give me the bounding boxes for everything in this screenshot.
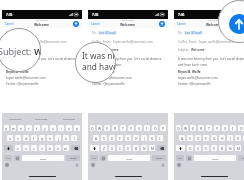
button[interactable]: Welcomed: [28, 113, 55, 123]
button[interactable]: x: [23, 145, 29, 151]
button[interactable]: N: [141, 145, 147, 151]
button[interactable]: K: [235, 135, 241, 141]
button[interactable]: Leo (iCloud): [99, 31, 116, 35]
button[interactable]: u: [50, 125, 56, 131]
button[interactable]: w: [11, 125, 16, 131]
button[interactable]: Leo (iCloud): [13, 31, 30, 35]
button[interactable]: Send: [73, 21, 79, 27]
button[interactable]: space: [22, 155, 64, 161]
button[interactable]: o: [66, 125, 72, 131]
button[interactable]: V: [211, 145, 217, 151]
button[interactable]: Emoji: [14, 155, 20, 161]
button[interactable]: Send: [159, 21, 165, 27]
button[interactable]: X: [109, 145, 115, 151]
button[interactable]: Z: [101, 145, 107, 151]
button[interactable]: Y: [214, 125, 220, 131]
button[interactable]: S: [101, 135, 107, 141]
button[interactable]: M: [149, 145, 155, 151]
button[interactable]: Emoji: [100, 155, 106, 161]
button[interactable]: R: [198, 125, 204, 131]
button[interactable]: U: [222, 125, 228, 131]
button[interactable]: Emoji keyboard: [177, 163, 181, 167]
button[interactable]: space: [108, 155, 150, 161]
button[interactable]: Emoji keyboard: [5, 163, 9, 167]
button[interactable]: j: [55, 135, 61, 141]
button[interactable]: t: [34, 125, 40, 131]
button[interactable]: I: [230, 125, 236, 131]
button[interactable]: return: [66, 155, 80, 161]
button[interactable]: Z: [187, 145, 193, 151]
button[interactable]: Dictate: [161, 163, 165, 167]
button[interactable]: R: [112, 125, 118, 131]
button[interactable]: V: [125, 145, 131, 151]
button[interactable]: Send message: [229, 14, 244, 34]
button[interactable]: p: [74, 125, 80, 131]
button[interactable]: i: [58, 125, 64, 131]
button[interactable]: G: [125, 135, 131, 141]
button[interactable]: f: [31, 135, 37, 141]
button[interactable]: E: [104, 125, 110, 131]
button[interactable]: l: [71, 135, 77, 141]
button[interactable]: “Welcome”: [2, 113, 28, 123]
button[interactable]: m: [63, 145, 69, 151]
button[interactable]: C: [117, 145, 123, 151]
button[interactable]: 123: [176, 155, 184, 161]
button[interactable]: y: [42, 125, 48, 131]
button[interactable]: b: [47, 145, 53, 151]
button[interactable]: Shift: [90, 145, 99, 151]
button[interactable]: g: [39, 135, 45, 141]
button[interactable]: B: [133, 145, 139, 151]
button[interactable]: L: [243, 135, 244, 141]
button[interactable]: W: [183, 125, 188, 131]
button[interactable]: Cancel: [174, 20, 189, 28]
button[interactable]: U: [136, 125, 142, 131]
button[interactable]: P: [160, 125, 166, 131]
button[interactable]: n: [55, 145, 61, 151]
button[interactable]: Cancel: [2, 20, 17, 28]
button[interactable]: Backspace: [71, 145, 80, 151]
button[interactable]: Q: [176, 125, 181, 131]
button[interactable]: k: [63, 135, 69, 141]
button[interactable]: C: [203, 145, 209, 151]
button[interactable]: q: [4, 125, 9, 131]
button[interactable]: A: [93, 135, 99, 141]
button[interactable]: v: [39, 145, 45, 151]
button[interactable]: T: [120, 125, 126, 131]
button[interactable]: 123: [4, 155, 12, 161]
button[interactable]: S: [187, 135, 193, 141]
button[interactable]: Shift: [176, 145, 185, 151]
button[interactable]: 123: [90, 155, 98, 161]
button[interactable]: F: [117, 135, 123, 141]
button[interactable]: Dictate: [75, 163, 79, 167]
button[interactable]: Backspace: [157, 145, 166, 151]
button[interactable]: h: [47, 135, 53, 141]
button[interactable]: B: [219, 145, 225, 151]
button[interactable]: return: [238, 155, 244, 161]
button[interactable]: J: [227, 135, 233, 141]
button[interactable]: D: [195, 135, 201, 141]
button[interactable]: T: [206, 125, 212, 131]
button[interactable]: A: [179, 135, 185, 141]
button[interactable]: X: [195, 145, 201, 151]
button[interactable]: O: [152, 125, 158, 131]
button[interactable]: K: [149, 135, 155, 141]
button[interactable]: M: [235, 145, 241, 151]
button[interactable]: Emoji keyboard: [91, 163, 95, 167]
button[interactable]: J: [141, 135, 147, 141]
button[interactable]: H: [219, 135, 225, 141]
button[interactable]: N: [227, 145, 233, 151]
button[interactable]: I: [144, 125, 150, 131]
button[interactable]: G: [211, 135, 217, 141]
button[interactable]: return: [152, 155, 166, 161]
button[interactable]: Shift: [4, 145, 13, 151]
button[interactable]: r: [26, 125, 32, 131]
button[interactable]: H: [133, 135, 139, 141]
button[interactable]: Emoji: [186, 155, 192, 161]
button[interactable]: Cancel: [88, 20, 103, 28]
button[interactable]: O: [238, 125, 244, 131]
button[interactable]: c: [31, 145, 37, 151]
button[interactable]: Leo (iCloud): [185, 31, 202, 35]
button[interactable]: z: [15, 145, 21, 151]
button[interactable]: L: [157, 135, 163, 141]
